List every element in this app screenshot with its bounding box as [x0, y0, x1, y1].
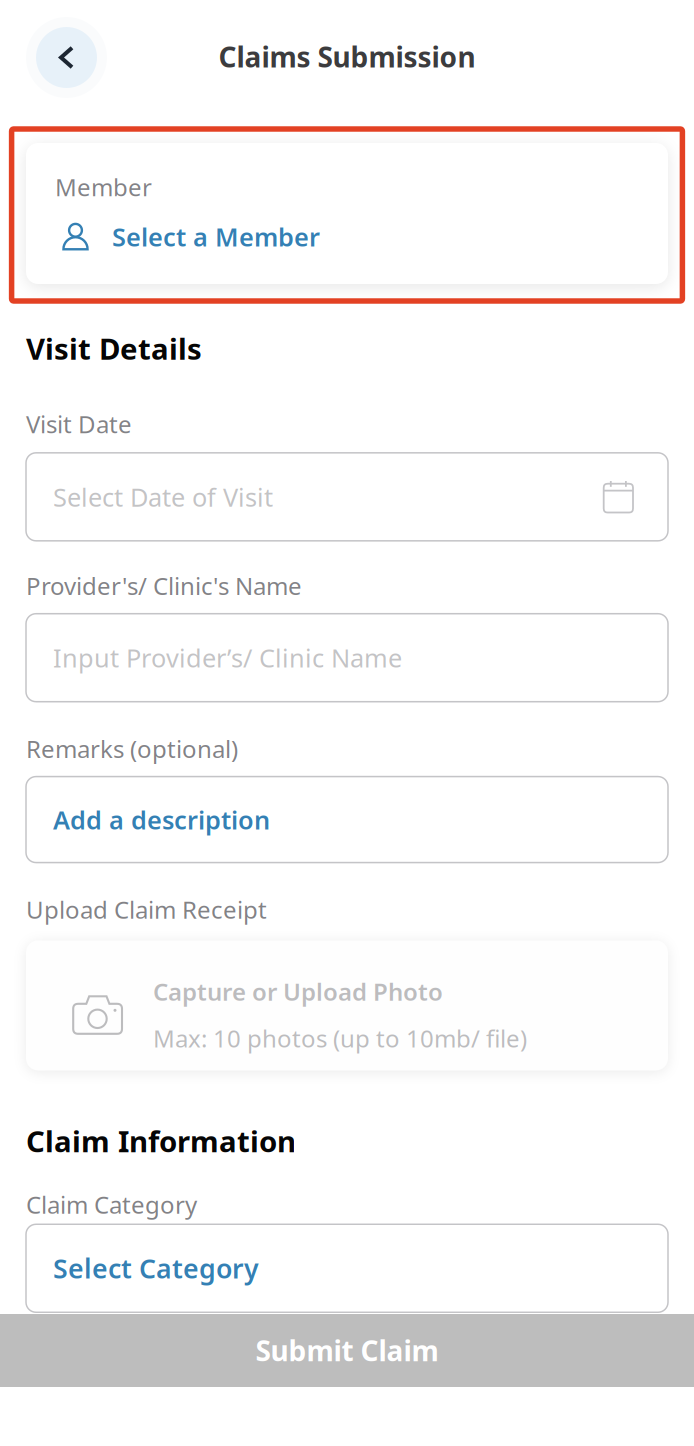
- staticText: Select Date of Visit: [53, 480, 273, 514]
- button[interactable]: Select Category: [26, 1224, 668, 1312]
- staticText: Max: 10 photos (up to 10mb/ file): [153, 1022, 527, 1054]
- staticText: Claim Category: [26, 1188, 197, 1220]
- staticText: Claim Information: [26, 1121, 296, 1160]
- button[interactable]: Back: [26, 17, 107, 98]
- staticText: Remarks (optional): [26, 733, 238, 765]
- staticText: Select a Member: [112, 220, 320, 253]
- staticText: Upload Claim Receipt: [26, 894, 267, 925]
- staticText: Input Provider’s/ Clinic Name: [53, 641, 402, 674]
- button[interactable]: Select a Member: [55, 220, 644, 253]
- staticText: Visit Date: [26, 408, 132, 440]
- staticText: Visit Details: [26, 329, 202, 368]
- staticText: Submit Claim: [255, 1332, 438, 1369]
- staticText: Member: [55, 171, 152, 203]
- staticText: Claims Submission: [218, 38, 475, 75]
- staticText: Add a description: [53, 803, 270, 836]
- button[interactable]: Input Provider’s/ Clinic Name: [26, 614, 668, 702]
- button[interactable]: Capture or Upload Photo: [26, 940, 668, 1070]
- button[interactable]: Submit Claim: [0, 1314, 694, 1387]
- staticText: Select Category: [53, 1251, 259, 1286]
- button[interactable]: Add a description: [26, 777, 668, 863]
- staticText: Provider's/ Clinic's Name: [26, 570, 302, 602]
- button[interactable]: Select Date of Visit: [26, 453, 668, 541]
- staticText: Capture or Upload Photo: [153, 975, 443, 1007]
